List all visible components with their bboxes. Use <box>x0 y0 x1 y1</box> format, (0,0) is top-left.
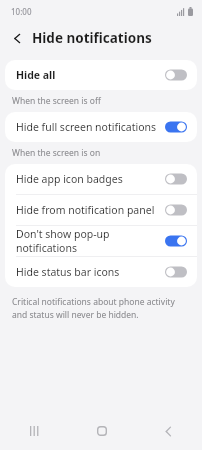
staticText: When the screen is off <box>12 95 101 107</box>
staticText: 10:00 <box>11 6 32 17</box>
button[interactable]: Home <box>68 416 135 446</box>
button[interactable]: Hide all <box>5 60 197 90</box>
staticText: Hide all <box>16 68 165 82</box>
button[interactable]: Hide from notification panel <box>5 195 197 225</box>
button[interactable]: Hide app icon badges <box>5 164 197 194</box>
staticText: Hide from notification panel <box>16 203 165 217</box>
button[interactable]: Recents <box>0 416 68 446</box>
staticText: When the screen is on <box>12 147 101 159</box>
button[interactable]: Don't show pop-up notifications <box>5 226 197 256</box>
staticText: Hide status bar icons <box>16 265 165 279</box>
staticText: Hide full screen notifications <box>16 120 165 134</box>
staticText: Don't show pop-up notifications <box>16 227 165 255</box>
button[interactable]: Hide full screen notifications <box>5 112 197 142</box>
staticText: Hide app icon badges <box>16 172 165 186</box>
staticText: Critical notifications about phone activ… <box>12 296 180 321</box>
button[interactable]: Back <box>135 416 202 446</box>
staticText: Hide notifications <box>32 29 152 47</box>
button[interactable]: Back <box>4 25 30 51</box>
button[interactable]: Hide status bar icons <box>5 257 197 287</box>
